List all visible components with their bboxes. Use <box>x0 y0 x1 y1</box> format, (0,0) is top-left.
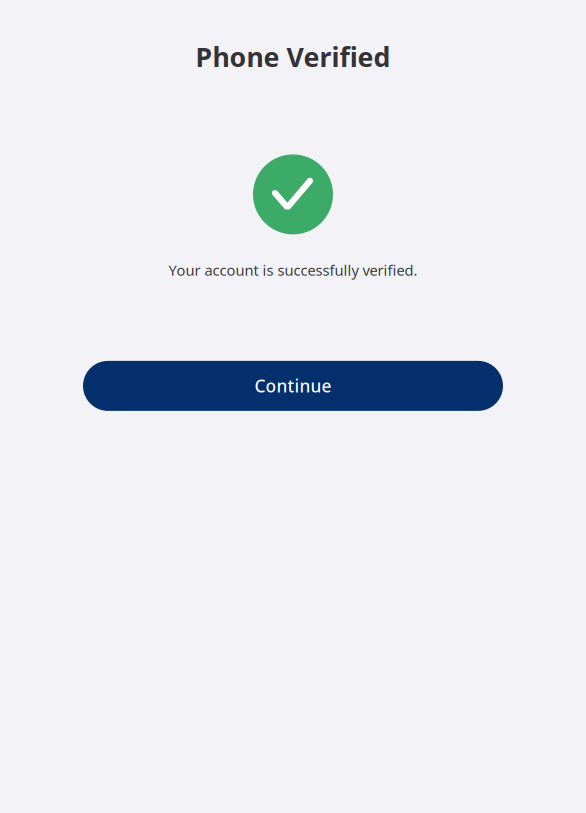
button[interactable]: Continue <box>83 361 503 411</box>
staticText: Your account is successfully verified. <box>168 260 417 280</box>
staticText: Continue <box>254 374 331 397</box>
staticText: Phone Verified <box>195 39 390 74</box>
